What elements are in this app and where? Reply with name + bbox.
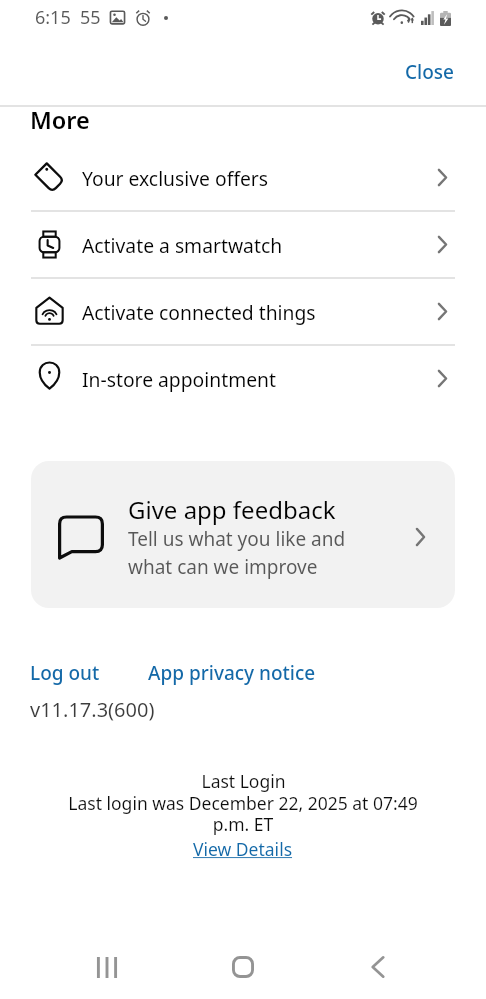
staticText: Your exclusive offers xyxy=(82,165,269,191)
staticText: App privacy notice xyxy=(148,660,316,686)
staticText: Log out xyxy=(30,660,100,686)
staticText: View Details xyxy=(193,837,293,861)
staticText: Tell us what you like and what can we im… xyxy=(128,526,356,580)
button[interactable]: Activate connected things xyxy=(0,279,486,346)
staticText: Activate a smartwatch xyxy=(82,232,283,258)
button[interactable]: Give app feedback xyxy=(31,461,455,608)
staticText: Last Login xyxy=(201,769,286,793)
staticText: 55 xyxy=(80,5,101,30)
staticText: Close xyxy=(405,59,454,85)
button[interactable]: Home xyxy=(216,941,270,993)
staticText: Give app feedback xyxy=(128,493,336,526)
button[interactable]: Log out xyxy=(22,652,108,694)
staticText: Activate connected things xyxy=(82,299,316,325)
button[interactable]: Your exclusive offers xyxy=(0,145,486,212)
button[interactable]: View Details xyxy=(183,831,303,867)
button[interactable]: Back xyxy=(351,941,405,993)
staticText: More xyxy=(30,104,90,136)
button[interactable]: Activate a smartwatch xyxy=(0,212,486,279)
staticText: 6:15 xyxy=(35,5,71,30)
button[interactable]: Close xyxy=(373,53,486,91)
staticText: v11.17.3(600) xyxy=(30,696,155,723)
button[interactable]: Recent apps xyxy=(80,941,134,993)
button[interactable]: In-store appointment xyxy=(0,346,486,411)
button[interactable]: App privacy notice xyxy=(140,652,324,694)
staticText: In-store appointment xyxy=(82,366,276,392)
staticText: Last login was December 22, 2025 at 07:4… xyxy=(63,791,423,836)
